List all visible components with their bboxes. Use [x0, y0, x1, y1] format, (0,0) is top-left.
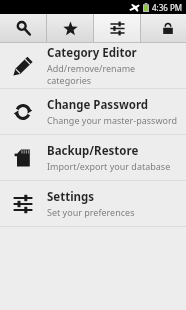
- staticText: Add/remove/rename categories: [47, 62, 178, 86]
- button[interactable]: Backup/Restore: [0, 135, 186, 180]
- button[interactable]: Lock: [150, 14, 186, 42]
- staticText: Set your preferences: [47, 206, 135, 218]
- button[interactable]: Search: [0, 14, 46, 42]
- staticText: Category Editor: [47, 45, 137, 61]
- staticText: Settings: [47, 189, 95, 205]
- staticText: Change your master-password: [47, 114, 177, 126]
- button[interactable]: Change Password: [0, 89, 186, 134]
- staticText: 4:36 PM: [152, 2, 183, 13]
- staticText: Change Password: [47, 97, 149, 113]
- button[interactable]: Favorites: [47, 14, 93, 42]
- button[interactable]: Filters: [94, 14, 140, 42]
- staticText: Import/export your database: [47, 160, 171, 172]
- staticText: Backup/Restore: [47, 143, 139, 159]
- button[interactable]: Settings: [0, 181, 186, 226]
- button[interactable]: Category Editor: [0, 43, 186, 88]
